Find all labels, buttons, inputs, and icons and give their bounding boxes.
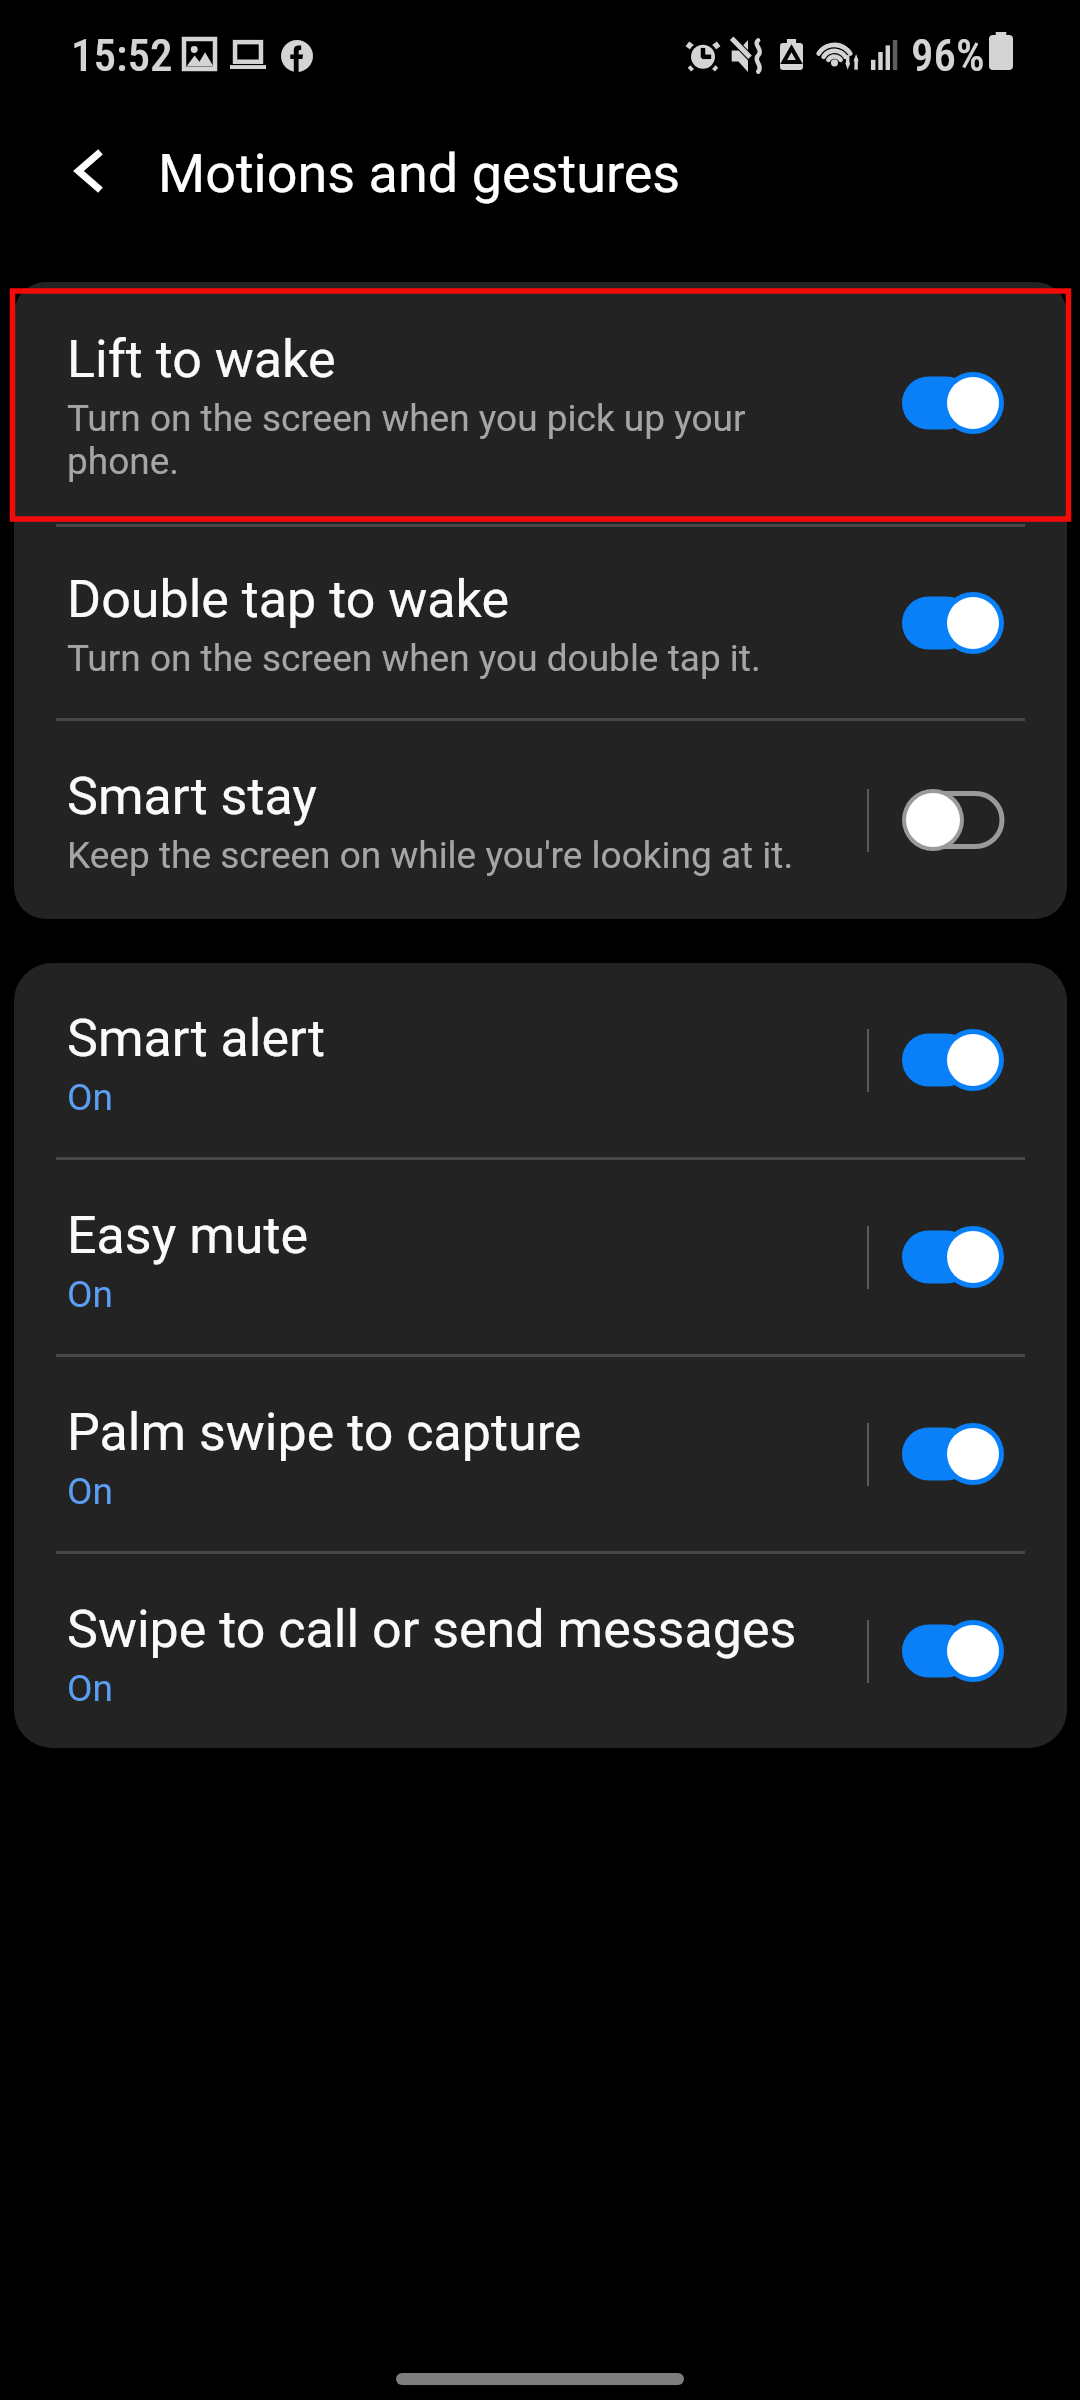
button[interactable]: Double tap to wake — [14, 527, 1067, 718]
button[interactable]: Smart stay, off — [902, 789, 1004, 851]
staticText: On — [67, 1667, 113, 1710]
staticText: 15:52 — [71, 29, 173, 82]
button[interactable]: Smart alert — [14, 963, 1067, 1157]
button[interactable]: Back — [44, 127, 132, 215]
staticText: Double tap to wake — [67, 569, 509, 630]
button[interactable]: Palm swipe to capture, on — [902, 1423, 1004, 1485]
button[interactable]: Swipe to call or send messages, on — [902, 1620, 1004, 1682]
staticText: Lift to wake — [67, 329, 336, 390]
button[interactable]: Lift to wake, on — [902, 372, 1004, 434]
staticText: Easy mute — [67, 1205, 309, 1266]
staticText: Motions and gestures — [158, 142, 681, 205]
button[interactable]: Palm swipe to capture — [14, 1357, 1067, 1551]
staticText: Smart stay — [67, 766, 317, 827]
button[interactable]: Smart stay — [14, 721, 1067, 919]
button[interactable]: Double tap to wake, on — [902, 592, 1004, 654]
button[interactable]: Lift to wake — [14, 282, 1067, 524]
staticText: Swipe to call or send messages — [67, 1599, 797, 1660]
staticText: Smart alert — [67, 1008, 325, 1069]
staticText: On — [67, 1273, 113, 1316]
staticText: On — [67, 1470, 113, 1513]
button[interactable]: Swipe to call or send messages — [14, 1554, 1067, 1748]
staticText: Turn on the screen when you pick up your… — [67, 397, 797, 483]
button[interactable]: Easy mute — [14, 1160, 1067, 1354]
staticText: On — [67, 1076, 113, 1119]
staticText: 96% — [911, 29, 985, 82]
button[interactable]: Smart alert, on — [902, 1029, 1004, 1091]
staticText: Turn on the screen when you double tap i… — [67, 637, 761, 680]
staticText: Palm swipe to capture — [67, 1402, 582, 1463]
staticText: Keep the screen on while you're looking … — [67, 834, 794, 877]
button[interactable]: Easy mute, on — [902, 1226, 1004, 1288]
